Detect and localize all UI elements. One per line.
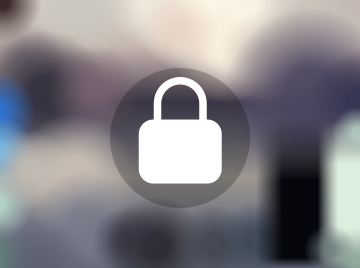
- button[interactable]: Locked: [110, 68, 250, 208]
